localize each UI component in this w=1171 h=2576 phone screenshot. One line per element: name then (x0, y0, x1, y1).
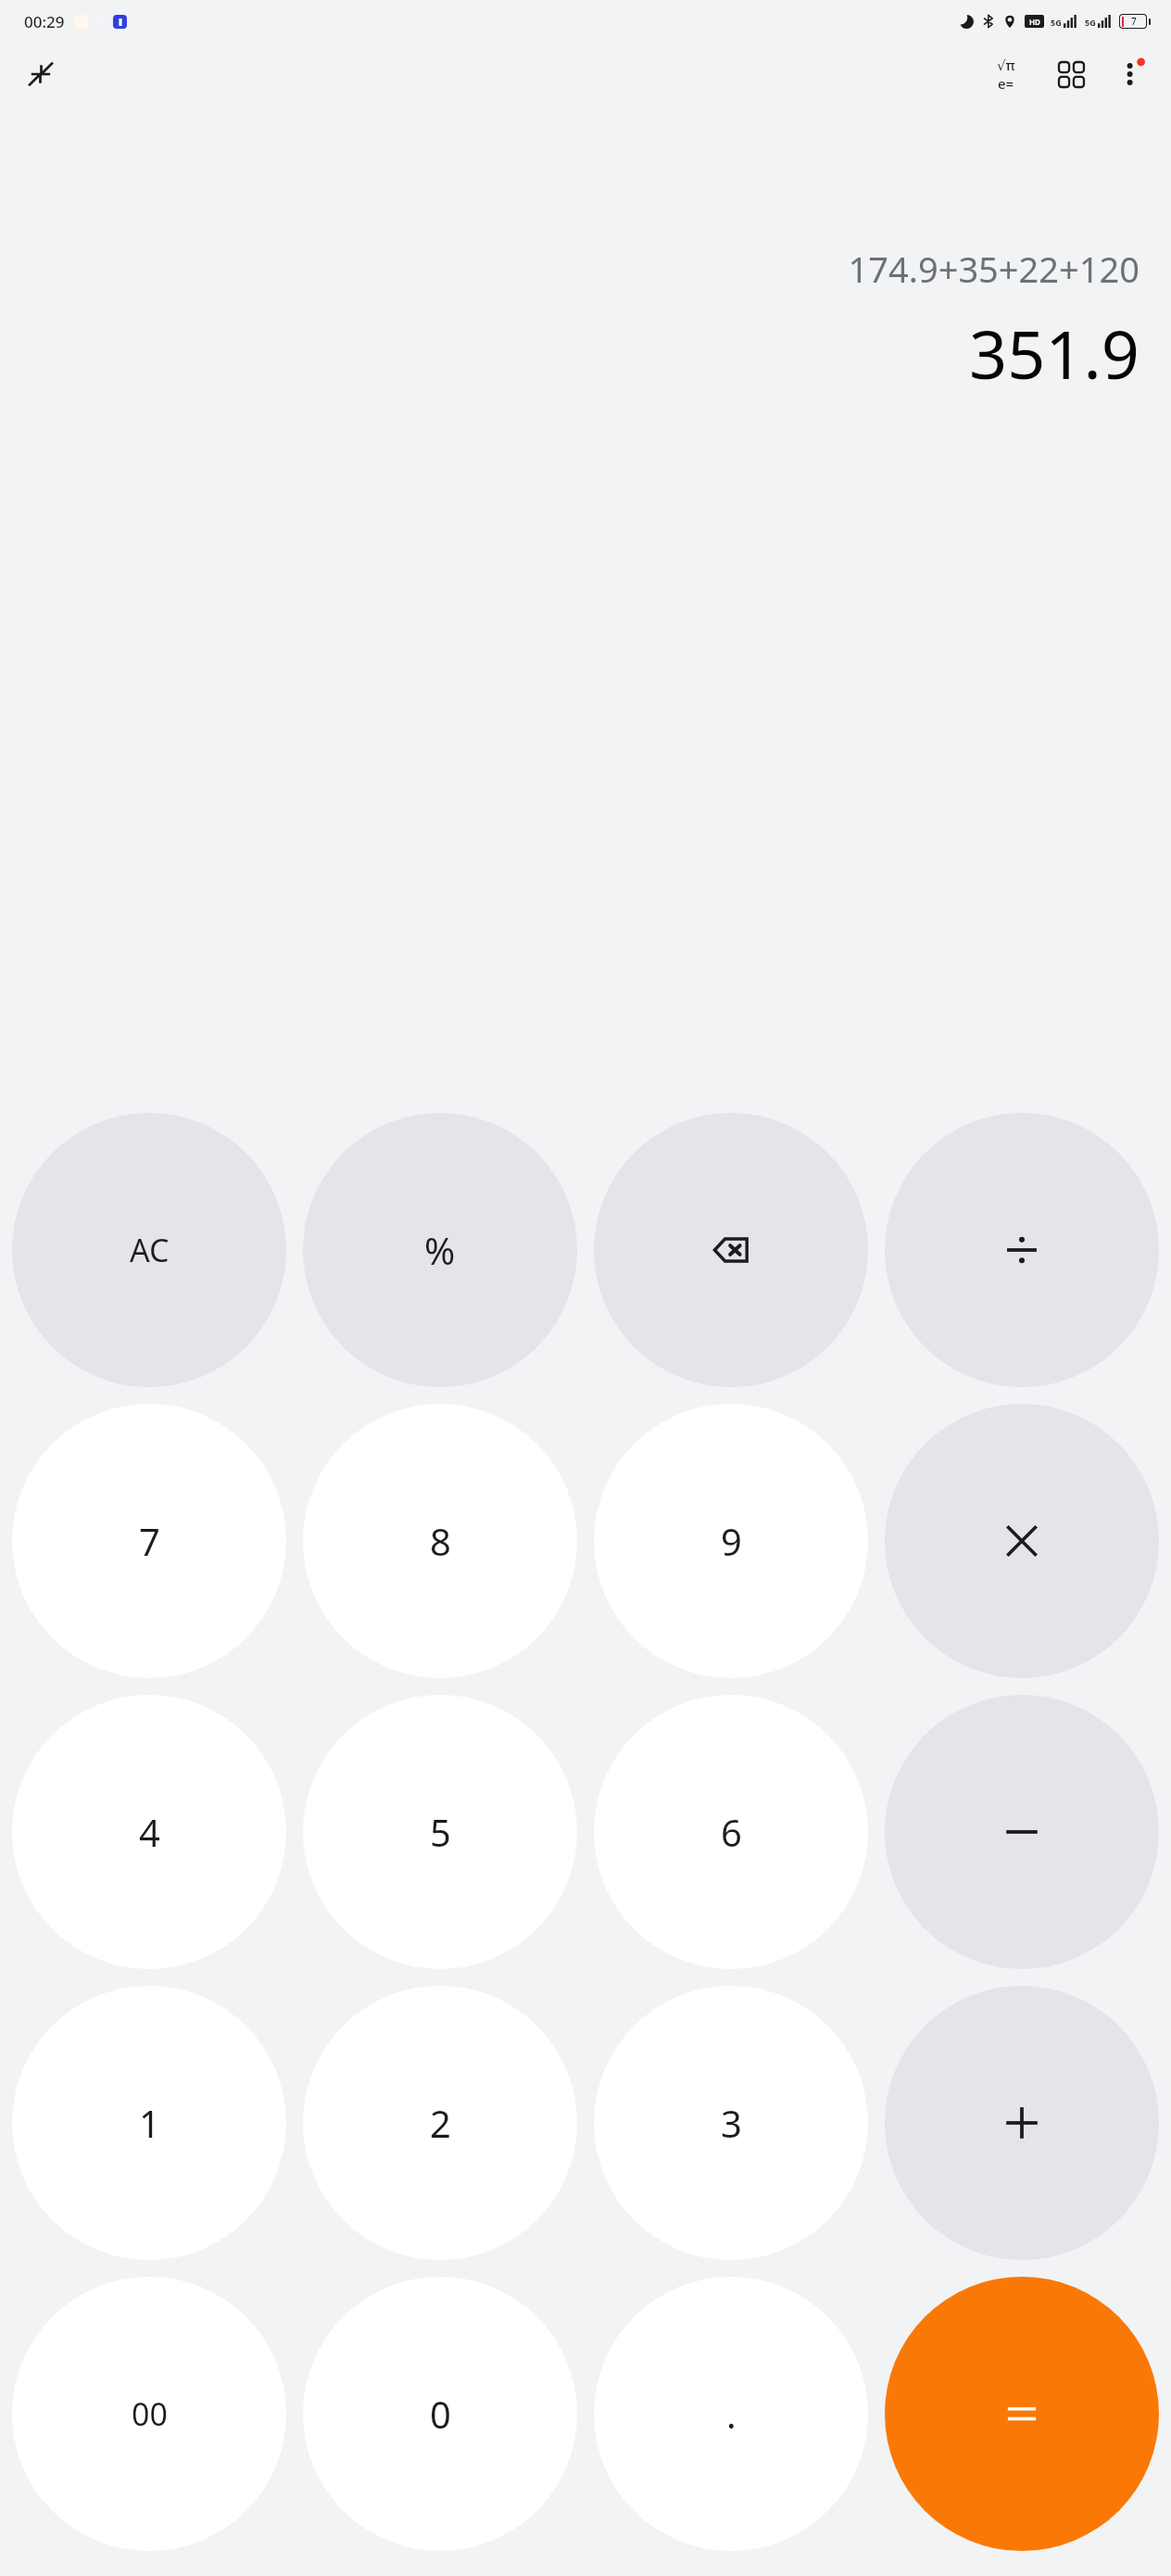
staticText: 5G (1085, 17, 1096, 28)
button[interactable]: 8 (303, 1404, 577, 1678)
button[interactable]: 5 (303, 1695, 577, 1969)
staticText: 4 (139, 1807, 160, 1857)
staticText: 174.9+35+22+120 (848, 245, 1140, 293)
staticText: . (726, 2389, 737, 2439)
staticText: e= (998, 74, 1014, 93)
button[interactable]: Backspace (594, 1113, 868, 1387)
button[interactable]: Add (885, 1986, 1159, 2260)
button[interactable]: % (303, 1113, 577, 1387)
button[interactable]: 00 (12, 2277, 286, 2551)
staticText: 7 (139, 1516, 160, 1566)
button[interactable]: Divide (885, 1113, 1159, 1387)
staticText: AC (130, 1229, 170, 1271)
staticText: 8 (430, 1516, 451, 1566)
button[interactable]: 3 (594, 1986, 868, 2260)
staticText: 1 (139, 2098, 160, 2148)
staticText: 00:29 (24, 11, 65, 32)
button[interactable]: 2 (303, 1986, 577, 2260)
button[interactable] (885, 2277, 1159, 2551)
button[interactable]: Subtract (885, 1695, 1159, 1969)
button[interactable]: Scientific mode (980, 48, 1032, 100)
staticText: 2 (430, 2098, 451, 2148)
staticText: 9 (721, 1516, 742, 1566)
staticText: HD (1029, 17, 1040, 27)
staticText: 3 (721, 2098, 742, 2148)
button[interactable]: 6 (594, 1695, 868, 1969)
button[interactable]: Layout (1045, 48, 1097, 100)
button[interactable]: . (594, 2277, 868, 2551)
staticText: % (424, 1225, 456, 1275)
staticText: 0 (430, 2389, 451, 2439)
button[interactable]: 9 (594, 1404, 868, 1678)
staticText: √π (997, 56, 1015, 74)
staticText: 5G (1051, 17, 1062, 28)
button[interactable]: 7 (12, 1404, 286, 1678)
button[interactable]: Collapse (17, 50, 65, 98)
button[interactable]: 0 (303, 2277, 577, 2551)
staticText: 6 (721, 1807, 742, 1857)
button[interactable]: Multiply (885, 1404, 1159, 1678)
button[interactable]: More options (1106, 48, 1158, 100)
button[interactable]: 1 (12, 1986, 286, 2260)
staticText: 5 (430, 1807, 451, 1857)
staticText: 00 (132, 2393, 168, 2435)
button[interactable]: 4 (12, 1695, 286, 1969)
button[interactable]: AC (12, 1113, 286, 1387)
staticText: 351.9 (968, 308, 1140, 398)
staticText: 7 (1131, 15, 1137, 28)
